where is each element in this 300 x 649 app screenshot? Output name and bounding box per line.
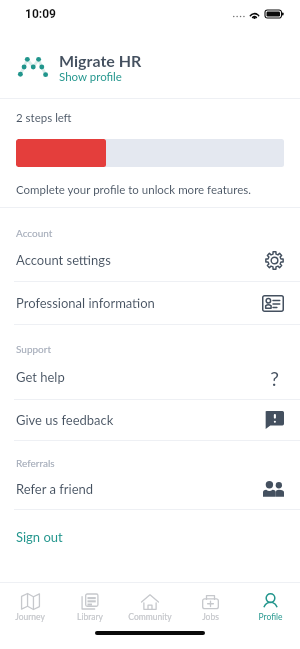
staticText: Support: [16, 343, 52, 355]
staticText: Profile: [258, 612, 283, 622]
staticText: Complete your profile to unlock more fea…: [16, 183, 251, 197]
button[interactable]: Journey: [0, 583, 60, 627]
staticText: 2 steps left: [16, 111, 72, 125]
staticText: Journey: [15, 612, 45, 622]
staticText: Account: [16, 227, 53, 239]
button[interactable]: Account settings: [0, 239, 300, 281]
other: Refer a friend: [263, 481, 284, 497]
staticText: Get help: [16, 369, 264, 385]
button[interactable]: Library: [60, 583, 120, 627]
staticText: ?: [270, 367, 279, 387]
button[interactable]: Jobs: [180, 583, 240, 627]
staticText: 10:09: [25, 7, 56, 21]
staticText: Referrals: [16, 457, 55, 469]
staticText: Show profile: [59, 70, 122, 84]
staticText: Migrate HR: [59, 51, 142, 70]
staticText: Sign out: [16, 529, 63, 545]
button[interactable]: Get help: [0, 355, 300, 399]
button[interactable]: Community: [120, 583, 180, 627]
staticText: Professional information: [16, 295, 262, 311]
other: Give us feedback: [265, 411, 284, 429]
button[interactable]: Migrate HR: [0, 28, 300, 98]
other: Professional information: [262, 295, 284, 312]
other: Account settings: [265, 251, 284, 270]
staticText: Jobs: [202, 612, 219, 622]
staticText: Refer a friend: [16, 481, 263, 497]
other: Get help: [264, 367, 284, 387]
staticText: Community: [128, 612, 172, 622]
button[interactable]: Give us feedback: [0, 400, 300, 440]
staticText: Give us feedback: [16, 412, 265, 428]
staticText: Account settings: [16, 252, 265, 268]
button[interactable]: Profile: [240, 583, 300, 627]
staticText: Library: [77, 612, 103, 622]
button[interactable]: Sign out: [0, 510, 300, 560]
button[interactable]: Professional information: [0, 282, 300, 324]
button[interactable]: Refer a friend: [0, 469, 300, 509]
